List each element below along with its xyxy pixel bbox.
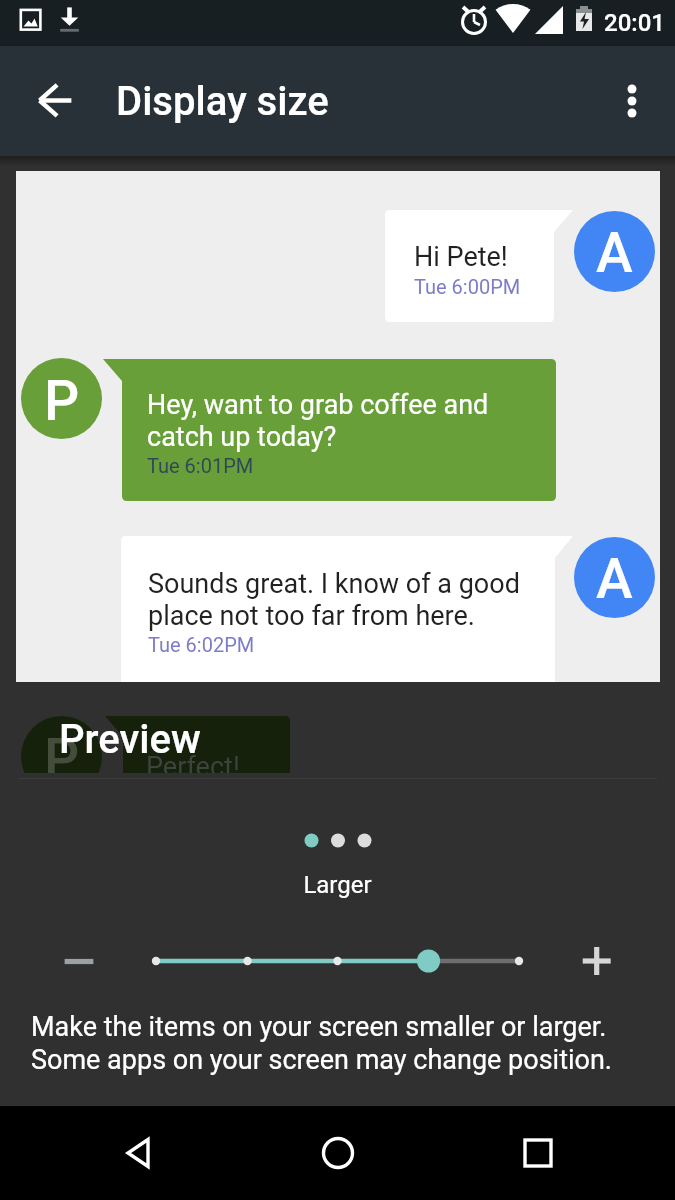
staticText: Some apps on your screen may change posi… — [31, 1044, 612, 1076]
button[interactable]: Navigate up — [24, 66, 94, 136]
staticText: Hey, want to grab coffee and catch up to… — [147, 389, 489, 453]
staticText: A — [596, 221, 633, 285]
staticText: Tue 6:00PM — [414, 275, 521, 298]
staticText: Preview — [59, 716, 201, 763]
button[interactable]: Back — [104, 1117, 176, 1189]
staticText: Tue 6:02PM — [148, 633, 255, 656]
staticText: 20:01 — [604, 9, 665, 37]
staticText: Larger — [0, 871, 675, 899]
staticText: Sounds great. I know of a good place not… — [148, 568, 520, 632]
staticText: Tue 6:01PM — [147, 454, 254, 477]
staticText: Hi Pete! — [414, 241, 508, 273]
staticText: P — [44, 727, 80, 773]
staticText: Make the items on your screen smaller or… — [31, 1011, 607, 1043]
button[interactable]: More options — [599, 68, 665, 134]
button[interactable]: Recent apps — [502, 1117, 574, 1189]
button[interactable]: Display size — [0, 939, 675, 983]
staticText: P — [44, 369, 80, 433]
staticText: A — [596, 547, 633, 611]
button[interactable]: Make smaller — [48, 930, 110, 992]
staticText: Display size — [116, 78, 329, 125]
button[interactable]: Home — [302, 1117, 374, 1189]
button[interactable]: Make larger — [566, 930, 628, 992]
staticText: Perfect! — [146, 751, 240, 773]
